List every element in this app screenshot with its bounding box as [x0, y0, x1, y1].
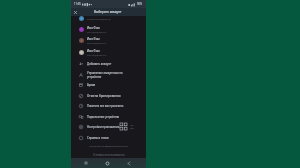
button[interactable]: Главный экран	[102, 158, 112, 168]
staticText: Выберите аккаунт	[94, 10, 122, 14]
button[interactable]: Добавить аккаунт	[71, 58, 146, 69]
staticText: firstname.lastname@gmail.com	[87, 18, 111, 20]
button[interactable]: Имя Фам	[71, 35, 146, 46]
button[interactable]: Имя Фам	[71, 47, 146, 58]
button[interactable]: Назад	[124, 158, 134, 168]
staticText: Имя Фам	[87, 37, 100, 41]
button[interactable]: Архив	[71, 79, 146, 90]
staticText: Отмена бронирования	[87, 94, 121, 98]
button[interactable]: Настройки приложения	[71, 121, 146, 132]
button[interactable]: Недавние	[81, 158, 91, 168]
button[interactable]: Подключение устройства	[71, 111, 146, 122]
button[interactable]: firstname.lastname@gmail.com	[71, 13, 146, 24]
button[interactable]: Политика конфиденциальности	[89, 144, 128, 147]
staticText: Имя Фам	[87, 49, 100, 53]
button[interactable]: Закрыть	[71, 8, 80, 16]
staticText: Справка и отзыв	[87, 136, 109, 140]
staticText: Архив	[87, 83, 96, 87]
button[interactable]: Управление аккаунтами на устройстве	[71, 69, 146, 80]
staticText: 90%	[137, 2, 143, 6]
button[interactable]: Пометить все как прочитано	[71, 100, 146, 111]
staticText: Добавить аккаунт	[87, 62, 112, 66]
staticText: 11:05	[74, 2, 81, 6]
button[interactable]: Условия использования	[93, 153, 125, 157]
staticText: Имя Фам	[87, 26, 100, 30]
staticText: imya.fam@gmail.com	[87, 54, 107, 57]
staticText: Настройки приложения	[87, 125, 120, 129]
button[interactable]: Имя Фам	[71, 24, 146, 35]
button[interactable]: Отмена бронирования	[71, 90, 146, 101]
staticText: QR-код	[130, 124, 136, 130]
staticText: Пометить все как прочитано	[87, 104, 124, 108]
staticText: Управление аккаунтами на устройстве	[87, 71, 123, 79]
button[interactable]: Справка и отзыв	[71, 132, 146, 143]
staticText: imya.fam@gmail.com	[87, 42, 107, 45]
staticText: Подключение устройства	[87, 115, 120, 119]
staticText: imya.fam@gmail.com	[87, 31, 107, 34]
